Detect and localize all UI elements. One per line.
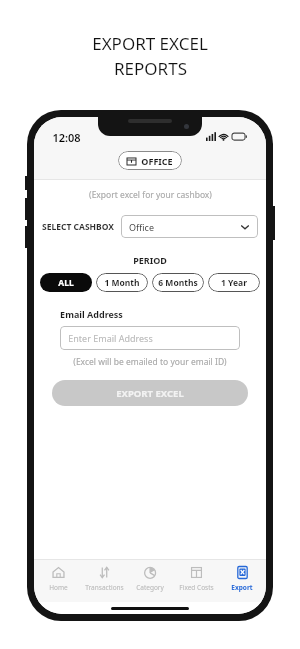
button[interactable]: Fixed Costs — [174, 565, 218, 592]
button[interactable]: 6 Months — [152, 273, 204, 292]
staticText: EXPORT EXCEL — [92, 32, 208, 55]
staticText: Email Address — [60, 308, 123, 320]
staticText: (Excel will be emailed to your email ID) — [73, 356, 227, 368]
button[interactable]: Category — [128, 565, 172, 592]
staticText: Office — [129, 221, 154, 233]
button[interactable]: EXPORT EXCEL — [52, 380, 248, 406]
staticText: REPORTS — [114, 57, 187, 80]
button[interactable]: Office — [121, 215, 258, 238]
staticText: (Export excel for your cashbox) — [89, 189, 212, 201]
staticText: PERIOD — [133, 254, 167, 266]
button[interactable]: Home — [36, 565, 80, 592]
button[interactable]: Export — [220, 565, 264, 592]
staticText: 6 Months — [158, 277, 198, 289]
button[interactable]: Transactions — [82, 565, 126, 592]
staticText: Category — [136, 583, 164, 592]
button[interactable]: Enter Email Address — [60, 326, 240, 350]
button[interactable]: OFFICE — [118, 151, 182, 170]
staticText: 1 Year — [221, 277, 247, 289]
staticText: 12:08 — [52, 130, 81, 145]
staticText: Fixed Costs — [179, 583, 214, 592]
staticText: Export — [231, 583, 253, 592]
staticText: OFFICE — [141, 155, 173, 167]
staticText: Enter Email Address — [68, 332, 153, 344]
staticText: SELECT CASHBOX — [42, 221, 114, 233]
button[interactable]: ALL — [40, 273, 92, 292]
button[interactable]: 1 Year — [208, 273, 260, 292]
staticText: Transactions — [85, 583, 124, 592]
staticText: ALL — [58, 277, 74, 289]
button[interactable]: 1 Month — [96, 273, 148, 292]
staticText: EXPORT EXCEL — [116, 387, 184, 400]
staticText: Home — [49, 583, 68, 592]
staticText: 1 Month — [104, 277, 140, 289]
